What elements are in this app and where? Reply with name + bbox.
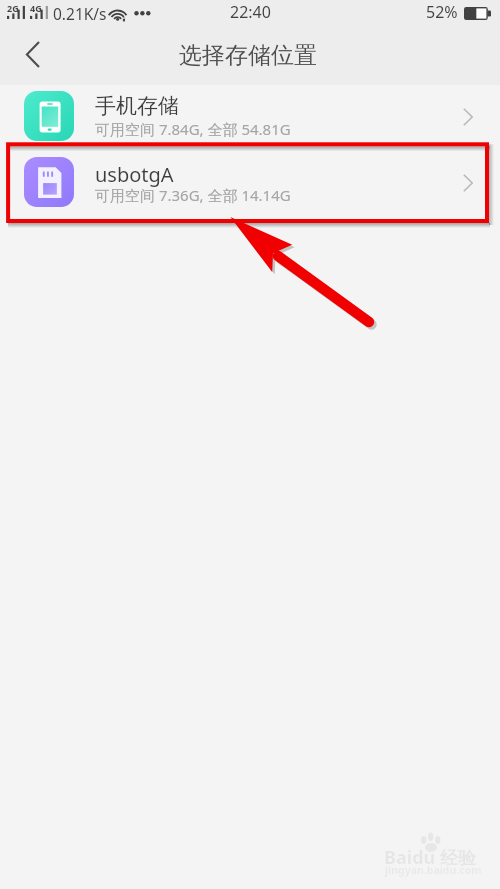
staticText: 可用空间 7.36G, 全部 14.14G <box>95 185 291 205</box>
staticText: 52% <box>426 1 458 23</box>
staticText: usbotgA <box>95 161 174 188</box>
staticText: 22:40 <box>230 1 271 23</box>
button[interactable]: usbotgA <box>0 151 500 217</box>
button[interactable]: Back <box>6 28 58 80</box>
staticText: 4G <box>30 2 42 14</box>
button[interactable]: 手机存储 <box>0 85 500 151</box>
staticText: 选择存储位置 <box>179 41 317 70</box>
staticText: 手机存储 <box>95 93 179 119</box>
staticText: 2G <box>7 2 19 14</box>
staticText: 0.21K/s <box>53 3 107 24</box>
staticText: Baidu 经验 <box>384 845 476 870</box>
staticText: jingyan.baidu.com <box>385 863 482 877</box>
staticText: 可用空间 7.84G, 全部 54.81G <box>95 119 291 139</box>
